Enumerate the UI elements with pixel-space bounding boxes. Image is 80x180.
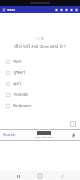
button[interactable]: ભારત: [0, 56, 80, 67]
button[interactable]: Toolbar action: [75, 8, 78, 12]
button[interactable]: Ad info: [70, 121, 76, 127]
button[interactable]: Back: [58, 172, 66, 180]
button[interactable]: Toolbar action: [70, 8, 73, 12]
button[interactable]: ગુજરાત: [0, 67, 80, 78]
button[interactable]: Toolbar action: [65, 8, 68, 12]
staticText: જવાબ: [7, 7, 15, 13]
staticText: સુરત: [13, 82, 21, 86]
button[interactable]: No Answer: [0, 100, 80, 111]
staticText: અમદાવાદ: [13, 93, 29, 97]
staticText: Show ads: [3, 133, 16, 137]
button[interactable]: Home: [36, 172, 44, 180]
button[interactable]: Recents: [14, 172, 22, 180]
staticText: 1 / 10: [36, 37, 44, 41]
button[interactable]: સુરત: [0, 78, 80, 89]
button[interactable]: Toolbar action: [60, 8, 63, 12]
staticText: નીચે પૈકી કયો વાક્ય સાચો છે ?: [5, 44, 75, 50]
staticText: No Answer: [13, 103, 32, 108]
staticText: i: [73, 122, 74, 126]
button[interactable]: Toolbar action: [55, 8, 58, 12]
staticText: ગુજરાત: [13, 71, 26, 75]
staticText: ભારત: [13, 60, 22, 64]
staticText: Try it Install now: [35, 136, 53, 139]
button[interactable]: અમદાવાદ: [0, 89, 80, 100]
button[interactable]: Show ads: [0, 129, 80, 141]
